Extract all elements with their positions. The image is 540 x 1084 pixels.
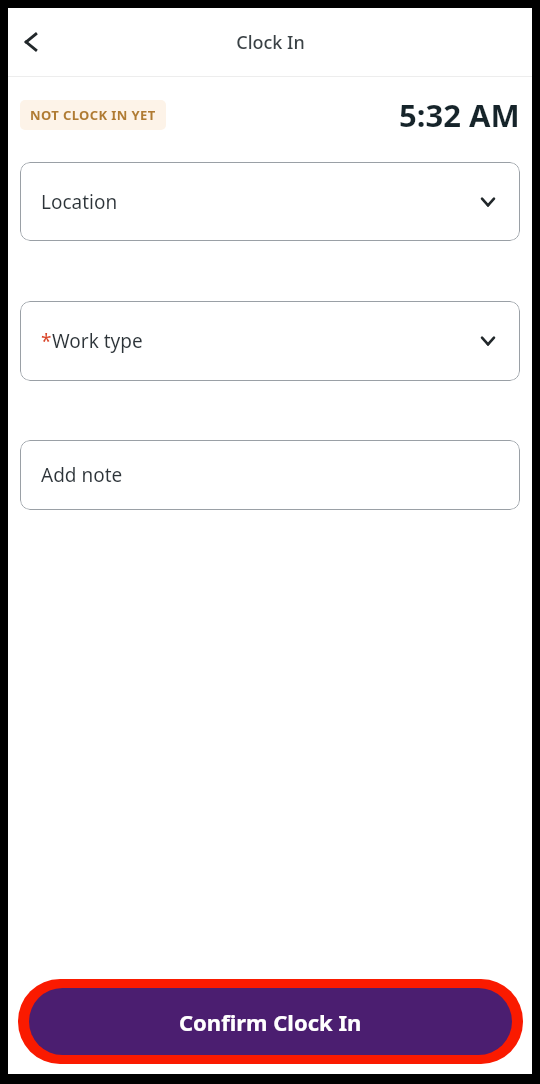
staticText: Location: [41, 189, 118, 215]
button[interactable]: *: [20, 301, 520, 381]
staticText: *: [41, 328, 52, 354]
button[interactable]: Confirm Clock In: [29, 988, 512, 1055]
staticText: NOT CLOCK IN YET: [30, 106, 156, 124]
staticText: Work type: [52, 328, 143, 354]
staticText: 5:32 AM: [399, 94, 520, 136]
button[interactable]: Location: [20, 162, 520, 241]
staticText: Confirm Clock In: [179, 1007, 362, 1037]
staticText: Add note: [41, 462, 123, 488]
staticText: Clock In: [236, 30, 305, 55]
button[interactable]: Add note: [20, 440, 520, 510]
button[interactable]: Back: [8, 19, 54, 65]
